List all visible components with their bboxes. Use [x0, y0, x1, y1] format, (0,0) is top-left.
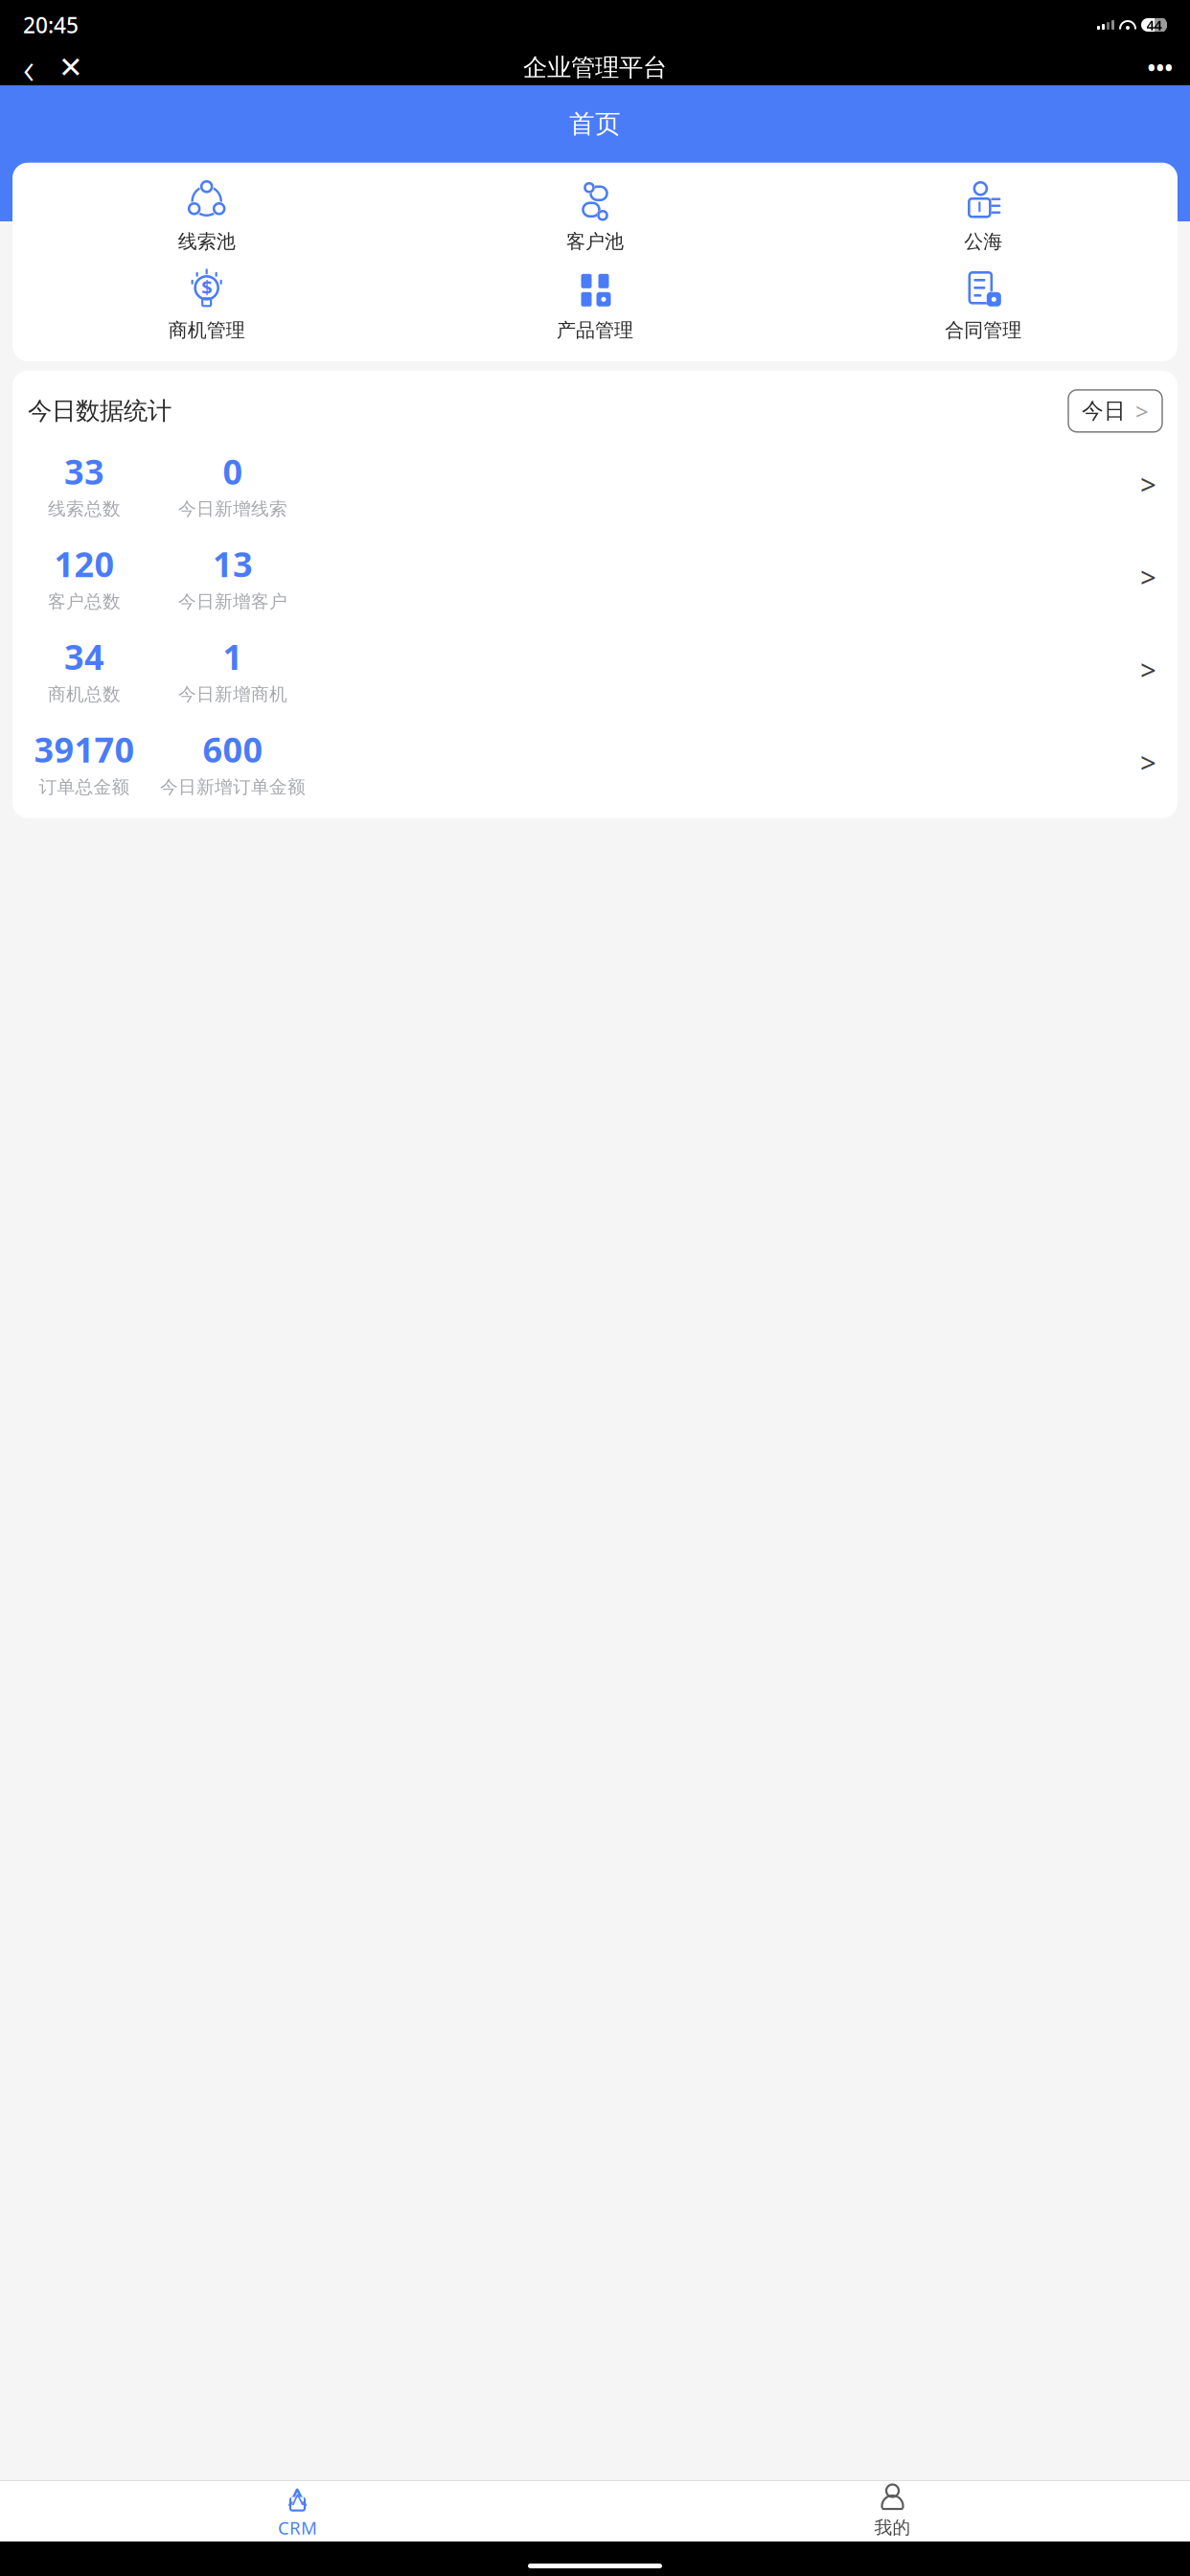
staticText: 120 [54, 541, 114, 587]
button[interactable]: $ [12, 265, 401, 348]
staticText: 33 [64, 448, 104, 494]
staticText: 企业管理平台 [523, 53, 667, 82]
staticText: ^ [291, 2486, 304, 2518]
staticText: 线索池 [178, 230, 235, 253]
staticText: ••• [1147, 53, 1173, 82]
button[interactable]: 产品管理 [401, 265, 789, 348]
button[interactable]: 客户池 [401, 176, 789, 259]
staticText: > [1135, 396, 1149, 426]
staticText: ‹ [23, 39, 34, 96]
staticText: 今日新增线索 [178, 498, 287, 520]
staticText: 合同管理 [945, 318, 1022, 342]
staticText: 20:45 [23, 10, 79, 39]
button[interactable]: 今日 [1068, 390, 1162, 432]
staticText: 今日数据统计 [28, 396, 172, 426]
staticText: > [1140, 558, 1156, 596]
staticText: 今日新增商机 [178, 683, 287, 705]
staticText: 首页 [569, 108, 621, 140]
staticText: CRM [278, 2516, 317, 2539]
staticText: 0 [223, 448, 243, 494]
staticText: 1 [223, 634, 243, 679]
button[interactable]: Close [50, 46, 92, 89]
staticText: > [1140, 651, 1156, 688]
staticText: > [1140, 465, 1156, 503]
staticText: 订单总金额 [39, 776, 130, 798]
staticText: 客户总数 [48, 591, 121, 613]
staticText: 13 [213, 541, 253, 587]
staticText: 产品管理 [557, 318, 633, 342]
button[interactable]: 120 [12, 530, 1178, 623]
button[interactable]: 公海 [789, 176, 1178, 259]
staticText: 公海 [964, 230, 1002, 253]
button[interactable]: More options [1138, 46, 1182, 89]
staticText: 39170 [34, 726, 135, 772]
staticText: 44 [1146, 16, 1162, 34]
staticText: 34 [64, 634, 104, 679]
button[interactable]: 线索池 [12, 176, 401, 259]
staticText: ✕ [58, 51, 83, 84]
staticText: $ [201, 274, 212, 300]
button[interactable]: 33 [12, 438, 1178, 530]
staticText: 今日 [1082, 398, 1126, 424]
button[interactable]: 39170 [12, 716, 1178, 809]
staticText: 今日新增订单金额 [160, 776, 306, 798]
button[interactable]: 合同管理 [789, 265, 1178, 348]
staticText: 客户池 [566, 230, 624, 253]
staticText: > [1140, 744, 1156, 781]
button[interactable]: Back [8, 46, 50, 89]
button[interactable]: 我的 [595, 2478, 1190, 2544]
staticText: 线索总数 [48, 498, 121, 520]
staticText: 600 [203, 726, 263, 772]
button[interactable]: ^ [0, 2477, 595, 2545]
staticText: 商机总数 [48, 683, 121, 705]
staticText: ^ [286, 2476, 309, 2527]
staticText: 今日新增客户 [178, 591, 287, 613]
staticText: 我的 [874, 2517, 911, 2539]
staticText: 商机管理 [168, 318, 245, 342]
button[interactable]: 34 [12, 623, 1178, 716]
